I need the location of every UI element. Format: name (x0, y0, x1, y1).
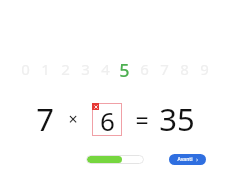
button[interactable]: 2 (57, 58, 74, 80)
button[interactable]: 6 (136, 58, 153, 80)
button[interactable]: 6 (92, 103, 122, 136)
staticText: 6 (140, 59, 149, 79)
button[interactable]: 4 (97, 58, 114, 80)
staticText: 9 (200, 59, 209, 79)
staticText: 5 (119, 58, 130, 80)
staticText: = (135, 104, 149, 135)
other: Wrong answer (92, 103, 99, 110)
staticText: 6 (100, 103, 115, 136)
button[interactable]: Avanti (169, 154, 206, 165)
staticText: × (68, 108, 78, 130)
staticText: 7 (36, 98, 54, 140)
staticText: 1 (41, 59, 50, 79)
staticText: 3 (81, 59, 90, 79)
button[interactable]: 5 (116, 58, 133, 80)
staticText: 0 (21, 59, 30, 79)
button[interactable]: 7 (156, 58, 173, 80)
button[interactable]: 1 (37, 58, 54, 80)
button[interactable]: 0 (17, 58, 34, 80)
staticText: 2 (61, 59, 70, 79)
button[interactable]: 9 (196, 58, 213, 80)
button[interactable]: 8 (176, 58, 193, 80)
staticText: 4 (101, 59, 110, 79)
button[interactable]: 3 (77, 58, 94, 80)
staticText: Avanti (177, 156, 193, 163)
staticText: 7 (160, 59, 169, 79)
staticText: 35 (159, 98, 195, 140)
button[interactable]: Progress (87, 156, 143, 163)
staticText: 8 (180, 59, 189, 79)
